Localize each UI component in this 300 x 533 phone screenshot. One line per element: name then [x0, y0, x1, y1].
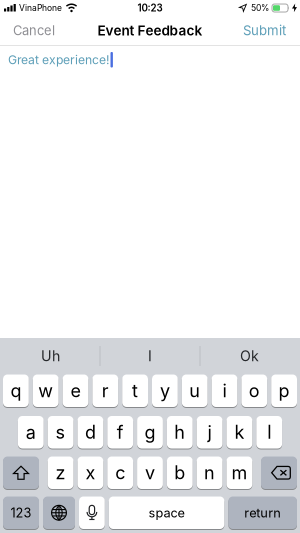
staticText: h — [174, 421, 185, 443]
staticText: Great experience! — [8, 52, 110, 67]
staticText: Cancel — [13, 23, 55, 38]
button[interactable]: s — [48, 415, 73, 449]
staticText: y — [160, 380, 170, 402]
button[interactable]: 123 — [3, 496, 39, 529]
button[interactable]: i — [212, 374, 237, 407]
staticText: 10:23 — [137, 2, 162, 14]
staticText: r — [102, 380, 109, 402]
staticText: k — [234, 421, 244, 443]
staticText: n — [204, 462, 215, 484]
button[interactable]: u — [182, 374, 208, 407]
staticText: 123 — [10, 505, 31, 520]
button[interactable]: z — [48, 456, 73, 489]
button[interactable]: r — [92, 374, 118, 407]
staticText: Event Feedback — [97, 22, 202, 39]
staticText: g — [144, 421, 155, 443]
staticText: return — [244, 505, 281, 520]
button[interactable]: t — [122, 374, 148, 407]
staticText: m — [231, 462, 247, 484]
button[interactable]: Ok — [200, 338, 299, 374]
button[interactable] — [43, 496, 75, 529]
button[interactable]: o — [241, 374, 267, 407]
button[interactable]: p — [271, 374, 297, 407]
staticText: i — [222, 380, 226, 402]
staticText: b — [174, 462, 185, 484]
button[interactable]: b — [167, 456, 193, 489]
staticText: o — [249, 380, 260, 402]
staticText: f — [117, 421, 124, 443]
staticText: t — [132, 380, 138, 402]
button[interactable]: f — [107, 415, 133, 449]
staticText: e — [70, 380, 80, 402]
staticText: I — [148, 347, 152, 365]
button[interactable]: y — [152, 374, 178, 407]
button[interactable]: return — [228, 496, 297, 529]
staticText: s — [56, 421, 66, 443]
button[interactable] — [79, 496, 105, 529]
button[interactable]: j — [197, 415, 222, 449]
button[interactable]: x — [77, 456, 103, 489]
staticText: l — [267, 421, 271, 443]
staticText: c — [115, 462, 125, 484]
staticText: Uh — [41, 347, 60, 365]
staticText: q — [10, 380, 21, 402]
staticText: d — [85, 421, 96, 443]
button[interactable]: v — [137, 456, 163, 489]
button[interactable]: e — [63, 374, 88, 407]
button[interactable] — [3, 456, 39, 489]
staticText: v — [145, 462, 155, 484]
button[interactable]: m — [226, 456, 252, 489]
button[interactable] — [261, 456, 297, 489]
button[interactable]: h — [167, 415, 193, 449]
button[interactable]: l — [256, 415, 282, 449]
staticText: j — [208, 421, 212, 443]
button[interactable]: d — [77, 415, 103, 449]
staticText: x — [85, 462, 95, 484]
staticText: p — [279, 380, 290, 402]
staticText: space — [149, 505, 185, 520]
staticText: a — [26, 421, 36, 443]
button[interactable]: q — [3, 374, 29, 407]
button[interactable]: n — [197, 456, 222, 489]
staticText: 50% — [251, 3, 269, 13]
staticText: u — [189, 380, 200, 402]
staticText: VinaPhone — [19, 3, 62, 13]
button[interactable]: space — [109, 496, 224, 529]
button[interactable]: Cancel — [0, 23, 55, 38]
button[interactable]: Submit — [243, 22, 300, 38]
button[interactable]: Uh — [1, 338, 100, 374]
button[interactable]: a — [18, 415, 44, 449]
staticText: Submit — [243, 22, 286, 38]
staticText: Ok — [240, 347, 259, 365]
staticText: z — [56, 462, 66, 484]
button[interactable]: I — [100, 338, 200, 374]
button[interactable]: k — [226, 415, 252, 449]
button[interactable]: c — [107, 456, 133, 489]
button[interactable]: g — [137, 415, 163, 449]
staticText: w — [38, 380, 53, 402]
button[interactable]: w — [33, 374, 59, 407]
